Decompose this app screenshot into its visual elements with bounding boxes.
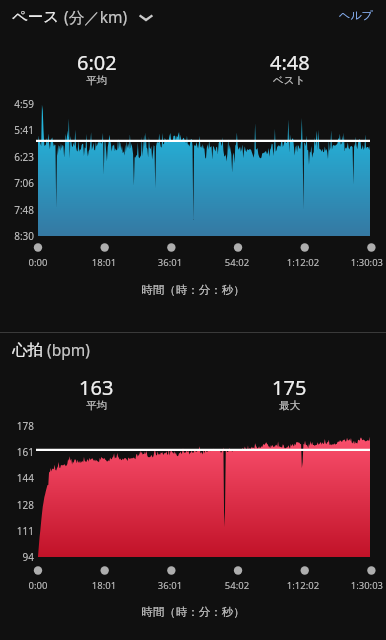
- staticText: 161: [0, 445, 34, 459]
- staticText: (bpm): [43, 339, 90, 360]
- staticText: 163: [79, 374, 114, 401]
- staticText: 94: [0, 550, 34, 564]
- staticText: 1:12:02: [268, 256, 338, 269]
- staticText: 54:02: [202, 579, 272, 592]
- staticText: 18:01: [69, 579, 139, 592]
- staticText: 144: [0, 471, 34, 485]
- staticText: 36:01: [135, 256, 205, 269]
- staticText: 8:30: [0, 229, 34, 243]
- staticText: 最大: [279, 399, 300, 412]
- staticText: 4:59: [0, 97, 34, 111]
- staticText: 54:02: [202, 256, 272, 269]
- staticText: 111: [0, 524, 34, 538]
- staticText: 175: [272, 374, 307, 401]
- staticText: 0:00: [3, 256, 73, 269]
- staticText: 4:48: [270, 49, 310, 76]
- staticText: 6:02: [77, 49, 117, 76]
- staticText: (分／km): [60, 6, 128, 27]
- staticText: 時間（時：分：秒）: [0, 283, 386, 297]
- staticText: 7:48: [0, 203, 34, 217]
- staticText: 128: [0, 498, 34, 512]
- staticText: 平均: [86, 74, 107, 87]
- staticText: 時間（時：分：秒）: [0, 605, 386, 619]
- button[interactable]: ペース: [12, 6, 156, 27]
- button[interactable]: ヘルプ: [339, 8, 373, 22]
- staticText: 178: [0, 419, 34, 433]
- button[interactable]: 心拍: [12, 339, 90, 360]
- staticText: 心拍: [12, 340, 43, 360]
- other: Change metric: [136, 7, 156, 27]
- staticText: 5:41: [0, 123, 34, 137]
- staticText: ヘルプ: [339, 8, 373, 22]
- staticText: 18:01: [69, 256, 139, 269]
- staticText: 6:23: [0, 150, 34, 164]
- staticText: ペース: [12, 7, 60, 27]
- staticText: ベスト: [273, 74, 306, 87]
- staticText: 1:30:03: [313, 256, 383, 269]
- staticText: 0:00: [3, 579, 73, 592]
- staticText: 1:30:03: [313, 579, 383, 592]
- staticText: 7:06: [0, 176, 34, 190]
- staticText: 平均: [86, 399, 107, 412]
- staticText: 36:01: [135, 579, 205, 592]
- staticText: 1:12:02: [268, 579, 338, 592]
